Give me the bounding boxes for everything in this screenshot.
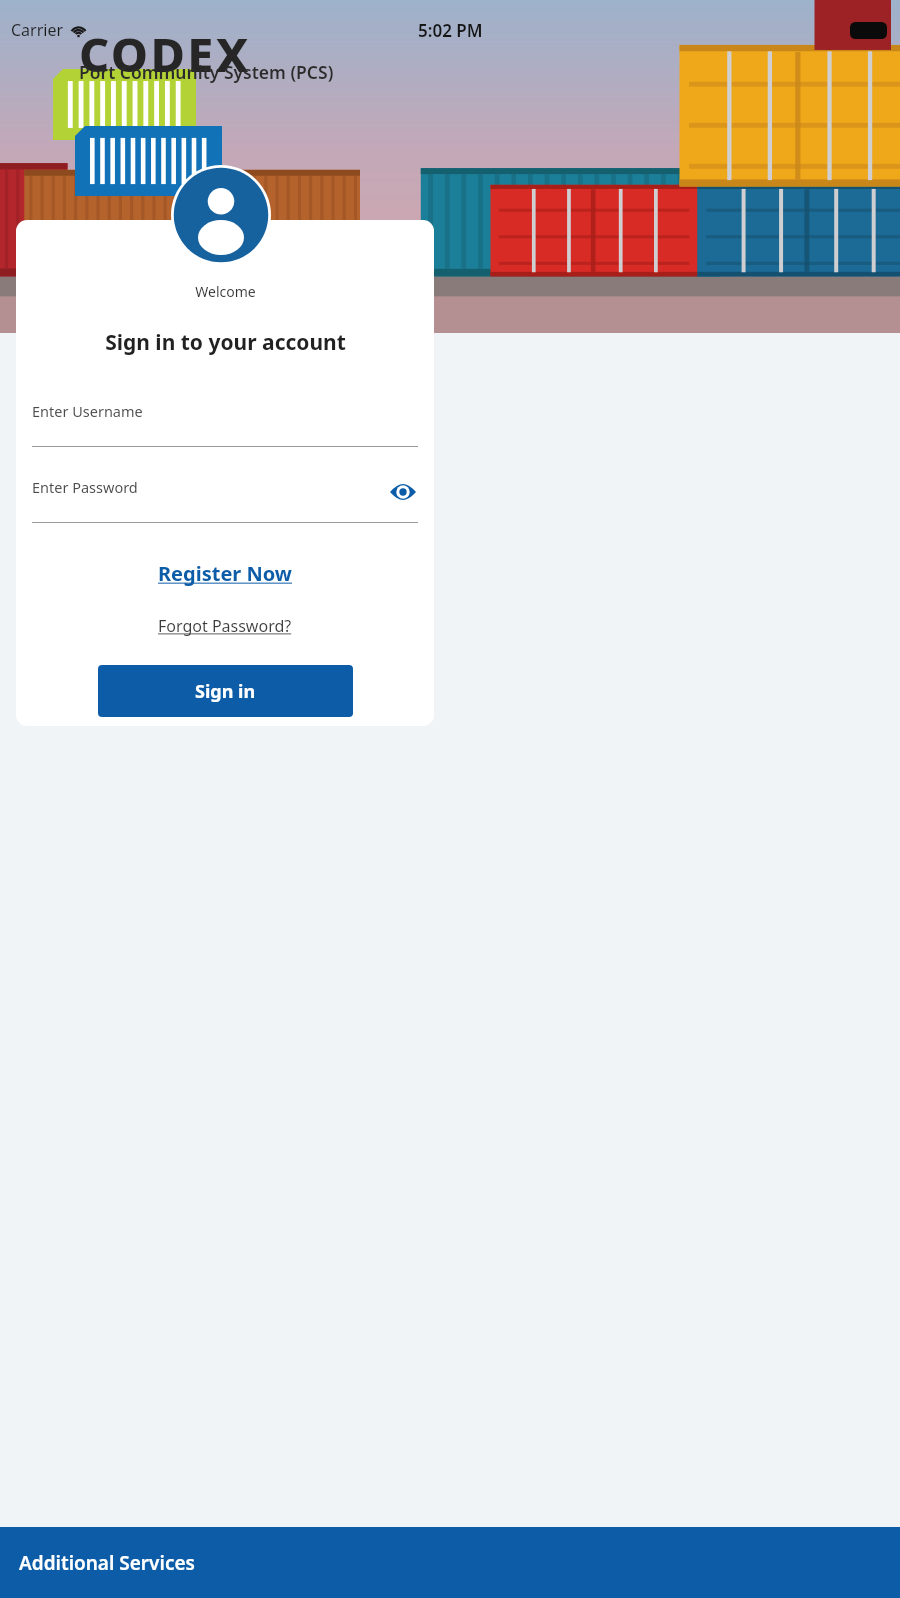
staticText: Sign in to your account xyxy=(105,328,346,357)
staticText: Enter Password xyxy=(32,477,138,497)
button[interactable]: Additional Services xyxy=(0,1527,900,1598)
button[interactable]: Show password xyxy=(388,477,418,507)
staticText: Additional Services xyxy=(19,1550,195,1576)
staticText: Forgot Password? xyxy=(158,615,292,637)
button[interactable]: Enter Username xyxy=(32,401,418,447)
staticText: Port Community System (PCS) xyxy=(79,60,334,84)
button[interactable]: Enter Password xyxy=(32,477,418,523)
staticText: CODEX xyxy=(79,22,251,86)
staticText: Enter Username xyxy=(32,401,143,421)
staticText: Sign in xyxy=(195,679,256,704)
other: Profile avatar xyxy=(171,165,271,265)
button[interactable]: Sign in xyxy=(98,665,353,717)
staticText: Welcome xyxy=(195,282,256,301)
staticText: Register Now xyxy=(158,560,292,587)
staticText: 5:02 PM xyxy=(418,19,483,42)
button[interactable]: Forgot Password? xyxy=(152,612,298,640)
staticText: Carrier xyxy=(11,19,64,41)
button[interactable]: Register Now xyxy=(152,557,298,590)
